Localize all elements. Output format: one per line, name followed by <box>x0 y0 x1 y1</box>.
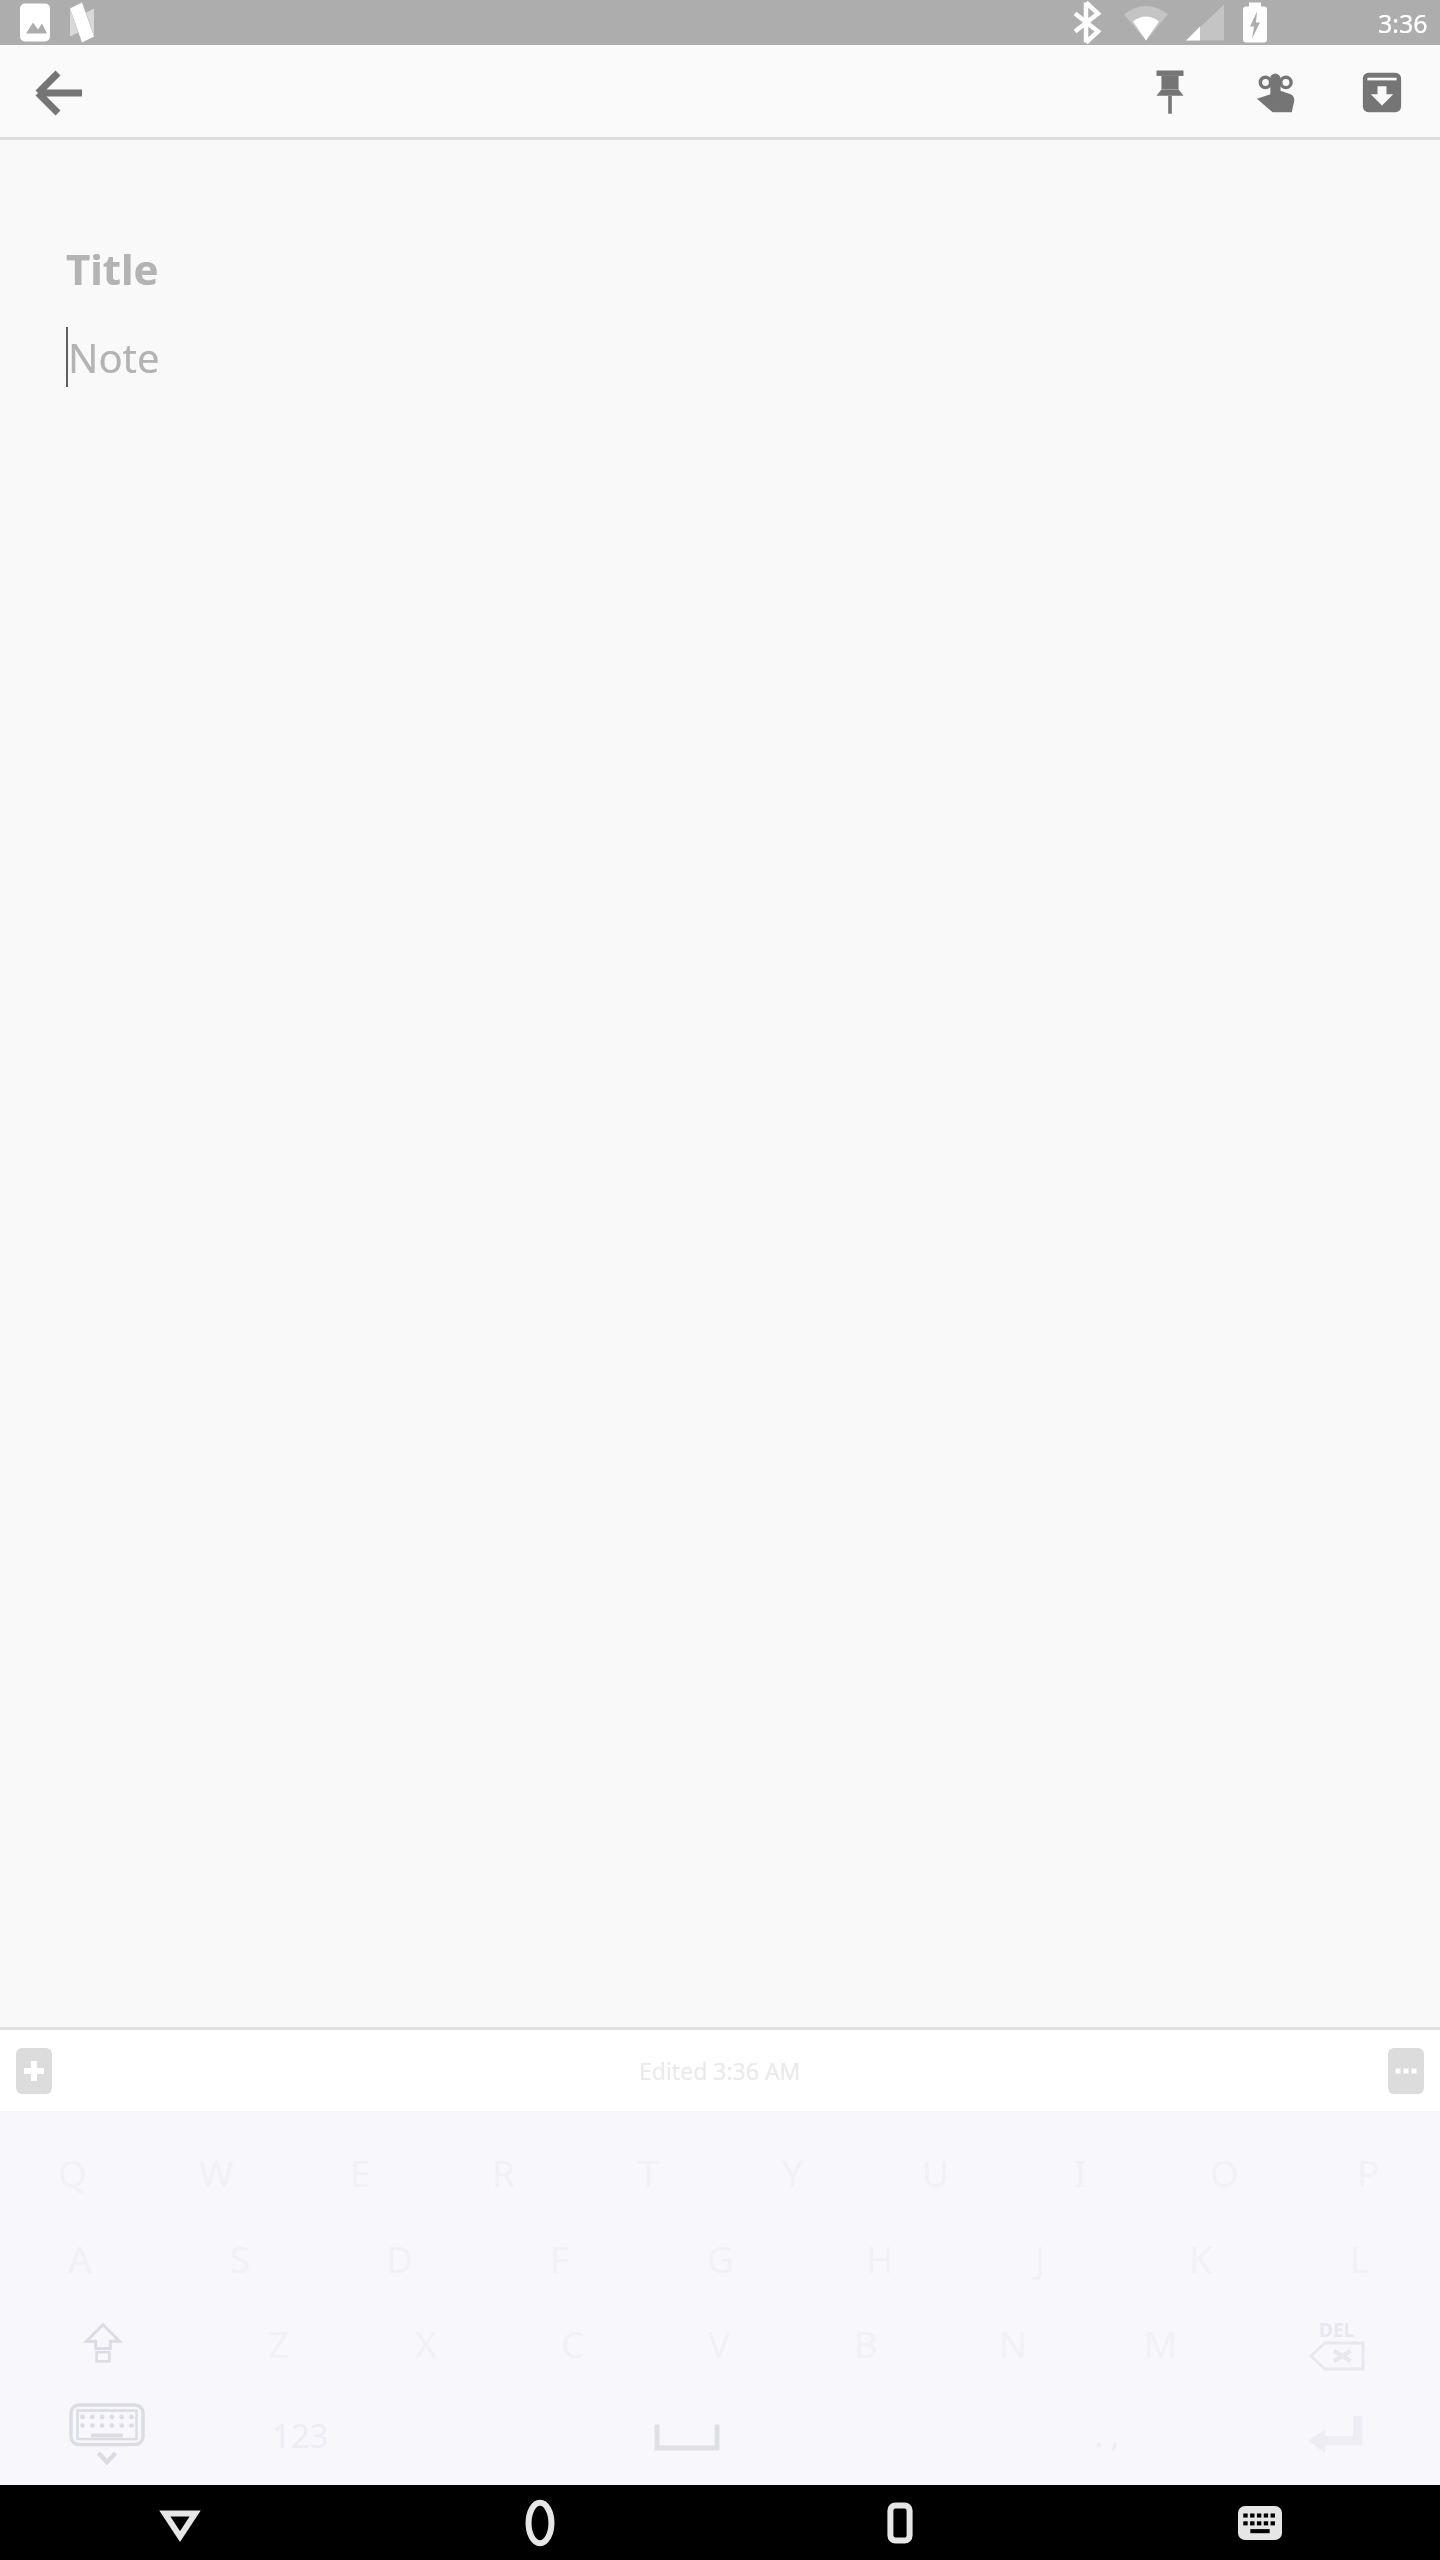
button[interactable]: Archive <box>1342 53 1422 133</box>
staticText: DEL <box>1319 2317 1355 2343</box>
button[interactable]: Reminder <box>1236 53 1316 133</box>
button[interactable]: More options <box>1388 2048 1424 2094</box>
staticText: Title <box>66 240 159 297</box>
button[interactable]: Delete <box>1234 2301 1440 2385</box>
button[interactable]: Add <box>16 2048 52 2094</box>
button[interactable]: Switch keyboard <box>1080 2485 1440 2560</box>
staticText: Edited 3:36 AM <box>639 2055 801 2086</box>
button[interactable]: Shift <box>0 2301 205 2385</box>
button[interactable]: Home <box>360 2485 720 2560</box>
staticText: 123 <box>272 2413 329 2458</box>
staticText: 3:36 <box>1378 6 1428 40</box>
staticText: Note <box>68 330 160 384</box>
button[interactable]: Back <box>24 57 96 129</box>
button[interactable]: Back <box>0 2485 360 2560</box>
button[interactable]: Pin <box>1130 53 1210 133</box>
button[interactable]: Recent apps <box>720 2485 1080 2560</box>
button[interactable]: Hide keyboard <box>0 2385 214 2485</box>
